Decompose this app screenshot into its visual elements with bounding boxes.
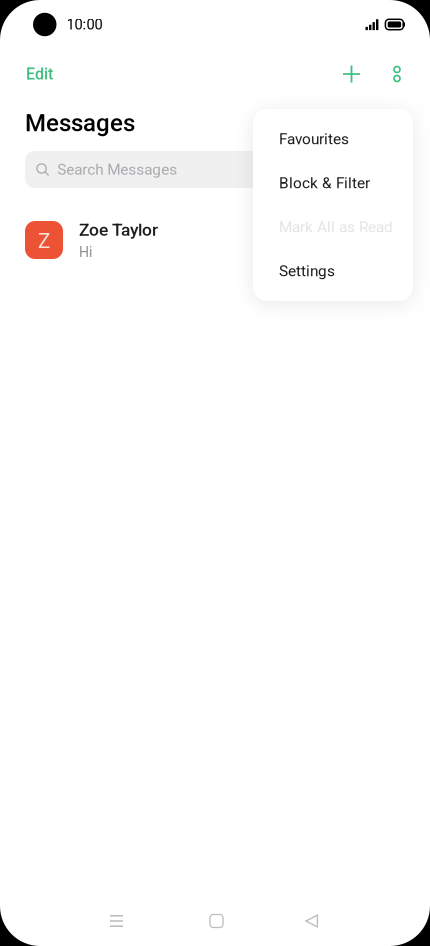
staticText: Mark All as Read (279, 218, 393, 236)
button[interactable]: Mark All as Read (253, 205, 413, 249)
staticText: Messages (25, 109, 135, 137)
button[interactable]: Home (186, 895, 247, 946)
staticText: Settings (279, 262, 335, 280)
button[interactable]: Z (25, 218, 405, 262)
staticText: Hi (79, 244, 92, 260)
staticText: Z (38, 229, 50, 253)
staticText: Zoe Taylor (79, 220, 158, 240)
button[interactable]: Favourites (253, 117, 413, 161)
button[interactable]: Search Messages (25, 151, 405, 188)
button[interactable]: Block & Filter (253, 161, 413, 205)
button[interactable]: Back (281, 895, 342, 946)
button[interactable]: More Options (380, 56, 414, 91)
button[interactable]: Recent Apps (86, 896, 147, 946)
staticText: Edit (26, 65, 53, 83)
staticText: Search Messages (57, 160, 177, 178)
staticText: 10:00 (66, 16, 102, 33)
staticText: Block & Filter (279, 174, 370, 192)
staticText: Favourites (279, 130, 349, 148)
button[interactable]: New Message (330, 55, 373, 92)
button[interactable]: Edit (18, 55, 61, 93)
button[interactable]: Settings (253, 249, 413, 293)
